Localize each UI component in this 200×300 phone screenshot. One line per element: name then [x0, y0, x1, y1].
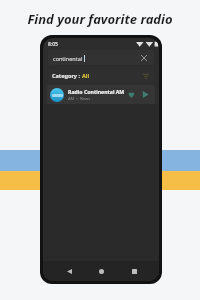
- staticText: 8:05: [48, 41, 58, 48]
- button[interactable]: Recents: [127, 264, 141, 278]
- staticText: All: [82, 72, 90, 79]
- staticText: AM • News: [68, 96, 91, 101]
- button[interactable]: Radio Continental AM: [47, 85, 155, 104]
- button[interactable]: Favorite: [125, 88, 138, 101]
- staticText: continental: [53, 55, 83, 62]
- button[interactable]: Category :: [48, 69, 154, 81]
- button[interactable]: Clear search: [139, 53, 149, 63]
- button[interactable]: Play: [139, 88, 152, 101]
- button[interactable]: Back: [62, 264, 76, 278]
- staticText: Category :: [52, 72, 80, 79]
- button[interactable]: Home: [94, 264, 108, 278]
- button[interactable]: Filter: [141, 71, 150, 80]
- button[interactable]: continental: [48, 50, 154, 65]
- staticText: Find your favorite radio: [0, 10, 200, 28]
- staticText: Radio Continental AM: [68, 88, 125, 95]
